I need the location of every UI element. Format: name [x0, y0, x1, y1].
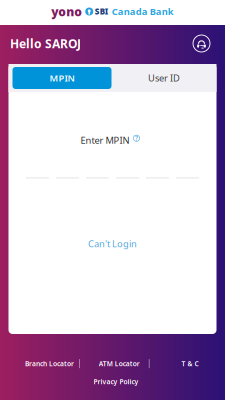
- staticText: Canada Bank: [112, 5, 174, 18]
- button[interactable]: Privacy Policy: [86, 377, 138, 386]
- button[interactable]: Customer support: [193, 35, 210, 52]
- staticText: Branch Locator: [25, 359, 74, 368]
- staticText: Hello SAROJ: [10, 35, 81, 51]
- button[interactable]: Branch Locator: [25, 359, 79, 368]
- button[interactable]: T & C: [150, 359, 199, 368]
- staticText: Can't Login: [88, 237, 137, 250]
- staticText: Privacy Policy: [93, 377, 138, 386]
- button[interactable]: User ID: [111, 64, 216, 92]
- staticText: yono: [51, 3, 82, 19]
- staticText: SBI: [95, 6, 109, 17]
- staticText: ATM Locator: [99, 359, 140, 368]
- staticText: User ID: [148, 72, 180, 84]
- staticText: Enter MPIN: [80, 134, 129, 146]
- button[interactable]: Can't Login: [88, 237, 137, 250]
- staticText: T & C: [182, 359, 199, 368]
- button[interactable]: MPIN: [8, 64, 111, 92]
- staticText: ?: [135, 134, 138, 143]
- staticText: MPIN: [49, 72, 74, 84]
- button[interactable]: ATM Locator: [80, 359, 149, 368]
